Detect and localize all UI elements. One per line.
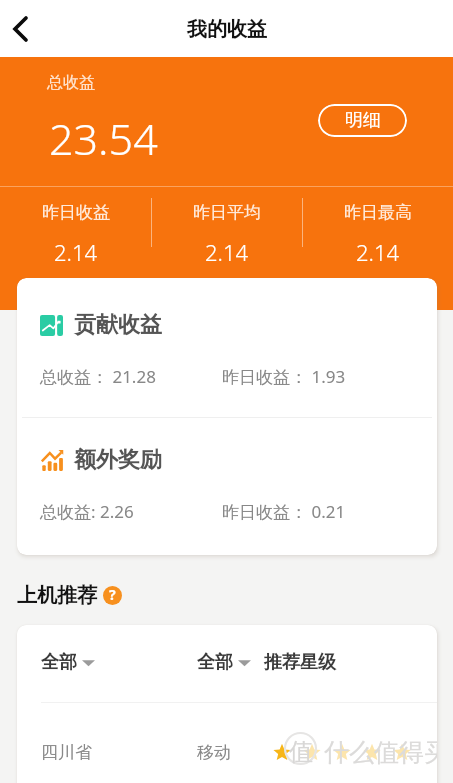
staticText: 2.14 xyxy=(356,237,400,267)
button[interactable]: 贡献收益 xyxy=(17,311,437,339)
staticText: 四川省 xyxy=(41,742,197,763)
staticText: 昨日收益： 1.93 xyxy=(222,365,346,388)
staticText: 昨日平均 xyxy=(193,202,261,223)
button[interactable]: 昨日最高 xyxy=(302,187,453,217)
staticText: 23.54 xyxy=(49,109,158,168)
button[interactable]: 全部 xyxy=(197,651,264,674)
staticText: 什么值得买 xyxy=(324,737,437,768)
button[interactable]: 明细 xyxy=(318,104,407,137)
button[interactable]: 昨日平均 xyxy=(151,187,302,217)
staticText: 值 xyxy=(289,737,313,767)
button[interactable]: Back xyxy=(0,9,40,49)
button[interactable]: 四川省 xyxy=(17,735,437,769)
staticText: 贡献收益 xyxy=(74,311,162,339)
button[interactable]: Help xyxy=(103,586,122,605)
staticText: 2.14 xyxy=(54,237,98,267)
staticText: 移动 xyxy=(197,742,273,763)
staticText: ? xyxy=(109,586,116,604)
staticText: 我的收益 xyxy=(187,17,267,42)
staticText: 总收益 xyxy=(47,73,95,93)
staticText: 全部 xyxy=(41,651,77,674)
staticText: 推荐星级 xyxy=(264,651,336,674)
staticText: 上机推荐 xyxy=(17,583,97,608)
staticText: 昨日收益 xyxy=(42,202,110,223)
staticText: 总收益： 21.28 xyxy=(40,365,222,388)
button[interactable]: 全部 xyxy=(41,651,197,674)
button[interactable]: 额外奖励 xyxy=(17,446,437,474)
staticText: 全部 xyxy=(197,651,233,674)
button[interactable]: 昨日收益 xyxy=(0,187,151,217)
staticText: 昨日收益： 0.21 xyxy=(222,500,346,523)
staticText: 总收益: 2.26 xyxy=(40,500,222,523)
staticText: 额外奖励 xyxy=(74,446,162,474)
staticText: 2.14 xyxy=(205,237,249,267)
staticText: 明细 xyxy=(345,109,381,132)
staticText: 昨日最高 xyxy=(344,202,412,223)
